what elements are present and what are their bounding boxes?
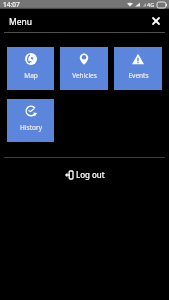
staticText: Map [24, 71, 38, 80]
button[interactable]: Log out [59, 165, 111, 184]
staticText: Events [128, 71, 149, 80]
button[interactable]: Map [7, 47, 54, 90]
button[interactable]: Vehicles [60, 47, 108, 90]
staticText: Menu [9, 16, 33, 28]
staticText: Vehicles [72, 71, 97, 80]
staticText: History [20, 123, 42, 132]
staticText: 4G [147, 1, 155, 8]
button[interactable]: Events [114, 47, 162, 90]
button[interactable]: History [7, 99, 54, 142]
staticText: Log out [76, 169, 105, 180]
staticText: 14:07 [3, 0, 20, 9]
button[interactable]: Close [149, 14, 163, 28]
